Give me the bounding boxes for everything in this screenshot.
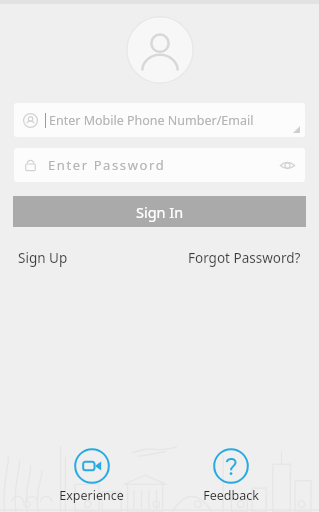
button[interactable]: Enter Mobile Phone Number/Email (14, 103, 305, 137)
button[interactable]: Enter Password (14, 148, 305, 182)
staticText: Sign In (136, 202, 184, 222)
staticText: Forgot Password? (188, 249, 301, 267)
staticText: Enter Password (48, 156, 166, 174)
staticText: Sign Up (18, 249, 68, 267)
button[interactable]: Sign Up (16, 246, 70, 270)
button[interactable]: Forgot Password? (186, 246, 303, 270)
button[interactable]: Feedback (197, 446, 265, 506)
button[interactable]: Experience (53, 446, 130, 506)
staticText: Enter Mobile Phone Number/Email (49, 112, 254, 129)
button[interactable]: Show password (275, 153, 299, 177)
button[interactable]: Sign In (13, 196, 306, 227)
staticText: Experience (59, 487, 124, 504)
staticText: Feedback (203, 487, 259, 504)
